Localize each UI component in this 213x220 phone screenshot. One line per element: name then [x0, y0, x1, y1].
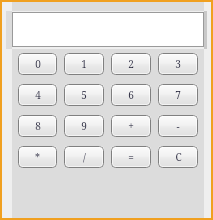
staticText: /: [83, 150, 86, 164]
staticText: +: [128, 119, 134, 133]
staticText: 3: [175, 57, 181, 71]
staticText: =: [128, 150, 134, 164]
staticText: 8: [35, 119, 41, 133]
button[interactable]: Clear: [158, 146, 198, 168]
button[interactable]: Multiply: [18, 146, 57, 168]
staticText: 9: [81, 119, 87, 133]
button[interactable]: 5: [64, 84, 104, 106]
button[interactable]: Minus: [158, 115, 198, 137]
staticText: -: [176, 119, 180, 133]
button[interactable]: 2: [111, 53, 151, 75]
staticText: 1: [81, 57, 87, 71]
button[interactable]: 6: [111, 84, 151, 106]
staticText: 5: [81, 88, 87, 102]
button[interactable]: 9: [64, 115, 104, 137]
button[interactable]: 4: [18, 84, 57, 106]
button[interactable]: Plus: [111, 115, 151, 137]
button[interactable]: 8: [18, 115, 57, 137]
staticText: 7: [175, 88, 181, 102]
button[interactable]: Equals: [111, 146, 151, 168]
button[interactable]: 3: [158, 53, 198, 75]
staticText: 6: [128, 88, 134, 102]
staticText: C: [175, 150, 182, 164]
staticText: 2: [128, 57, 134, 71]
staticText: 0: [35, 57, 41, 71]
button[interactable]: Divide: [64, 146, 104, 168]
staticText: 4: [35, 88, 41, 102]
button[interactable]: 7: [158, 84, 198, 106]
staticText: *: [35, 150, 40, 164]
button[interactable]: 1: [64, 53, 104, 75]
button[interactable]: 0: [18, 53, 57, 75]
